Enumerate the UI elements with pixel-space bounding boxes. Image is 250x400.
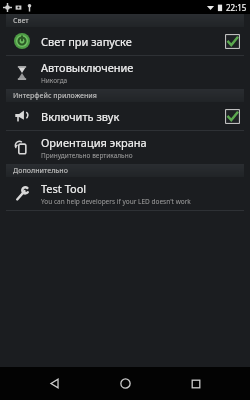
staticText: Дополнительно: [13, 166, 68, 176]
button[interactable]: Свет при запуске: [0, 27, 250, 55]
button[interactable]: Home: [108, 367, 142, 400]
staticText: You can help developers if your LED does…: [41, 197, 191, 206]
staticText: Ориентация экрана: [41, 135, 147, 150]
staticText: Включить звук: [41, 109, 120, 124]
button[interactable]: Toggle: [225, 34, 240, 49]
button[interactable]: Recent apps: [179, 367, 213, 400]
button[interactable]: Back: [37, 367, 71, 400]
staticText: Автовыключение: [41, 60, 134, 75]
staticText: Интерфейс приложения: [13, 91, 97, 101]
button[interactable]: Включить звук: [0, 102, 250, 130]
button[interactable]: Toggle: [225, 109, 240, 124]
button[interactable]: Автовыключение: [0, 56, 250, 89]
staticText: Свет при запуске: [41, 34, 132, 49]
button[interactable]: Ориентация экрана: [0, 131, 250, 164]
staticText: Никогда: [41, 76, 68, 85]
button[interactable]: Test Tool: [0, 177, 250, 210]
staticText: 22:15: [226, 2, 247, 13]
staticText: Свет: [13, 16, 29, 26]
staticText: Test Tool: [41, 181, 87, 196]
staticText: Принудительно вертикально: [41, 151, 133, 160]
